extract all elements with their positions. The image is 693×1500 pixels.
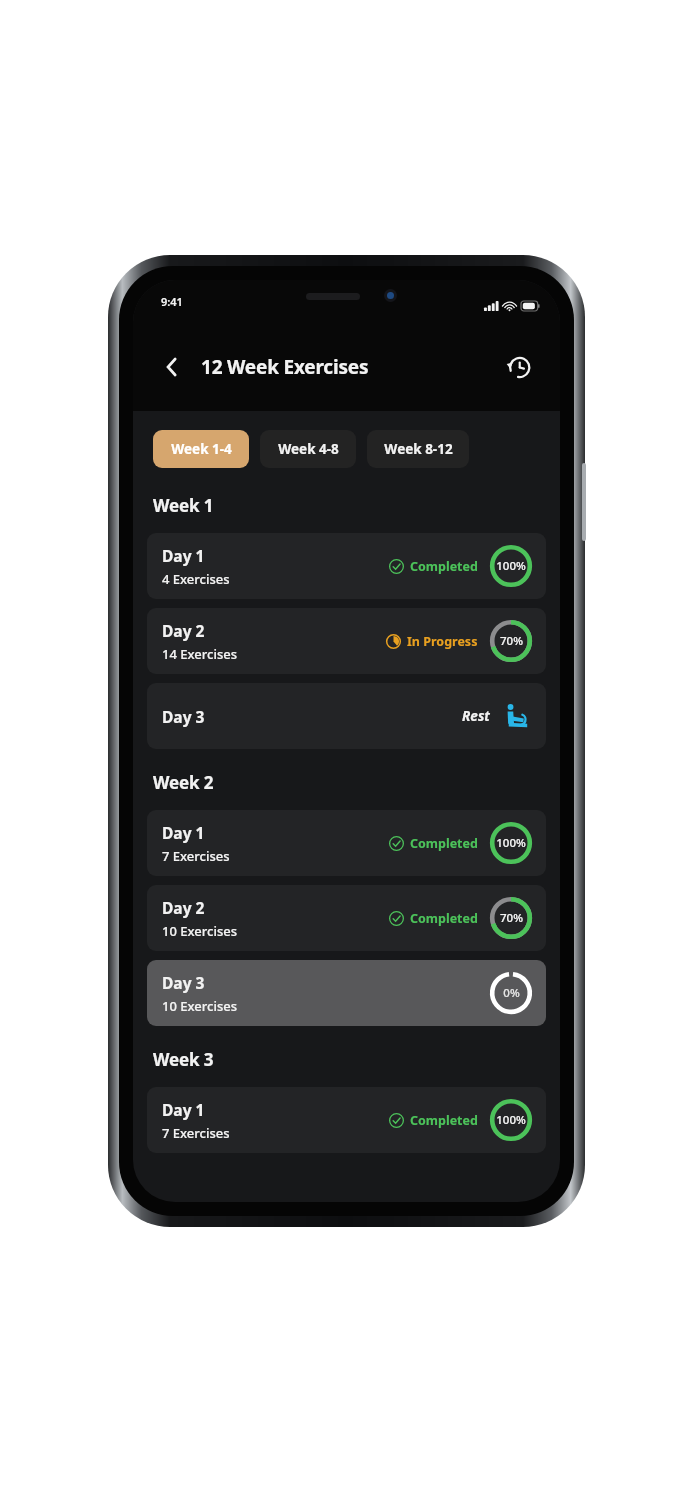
- staticText: Completed: [410, 835, 478, 852]
- staticText: Week 2: [153, 771, 214, 794]
- button[interactable]: Week 4-8: [260, 430, 356, 468]
- staticText: Rest: [462, 707, 490, 725]
- staticText: 10 Exercises: [162, 997, 237, 1015]
- button[interactable]: Day 3: [147, 683, 546, 749]
- staticText: Completed: [410, 558, 478, 575]
- staticText: Day 1: [162, 1099, 205, 1120]
- staticText: Week 1-4: [171, 440, 232, 458]
- staticText: Completed: [410, 1112, 478, 1129]
- staticText: 9:41: [161, 294, 183, 309]
- staticText: Day 3: [162, 706, 205, 727]
- button[interactable]: Day 2: [147, 608, 546, 674]
- button[interactable]: Day 3: [147, 960, 546, 1026]
- staticText: 100%: [496, 835, 526, 851]
- button[interactable]: Day 1: [147, 810, 546, 876]
- staticText: Day 1: [162, 545, 205, 566]
- button[interactable]: Week 1-4: [153, 430, 249, 468]
- staticText: 12 Week Exercises: [201, 354, 369, 380]
- button[interactable]: Day 2: [147, 885, 546, 951]
- staticText: 100%: [496, 1112, 526, 1128]
- staticText: 7 Exercises: [162, 1124, 230, 1142]
- button[interactable]: Week 8-12: [367, 430, 469, 468]
- staticText: 7 Exercises: [162, 847, 230, 865]
- staticText: 100%: [496, 558, 526, 574]
- staticText: In Progress: [407, 633, 478, 650]
- staticText: 0%: [503, 985, 520, 1001]
- staticText: Week 4-8: [278, 440, 339, 458]
- staticText: 70%: [500, 633, 523, 649]
- button[interactable]: History: [498, 346, 540, 388]
- staticText: 14 Exercises: [162, 645, 237, 663]
- staticText: Week 1: [153, 494, 214, 517]
- staticText: Completed: [410, 910, 478, 927]
- staticText: Day 2: [162, 620, 205, 641]
- staticText: 10 Exercises: [162, 922, 237, 940]
- staticText: 4 Exercises: [162, 570, 230, 588]
- staticText: Day 2: [162, 897, 205, 918]
- staticText: Week 3: [153, 1048, 214, 1071]
- button[interactable]: Day 1: [147, 1087, 546, 1153]
- button[interactable]: Day 1: [147, 533, 546, 599]
- staticText: 70%: [500, 910, 523, 926]
- staticText: Day 1: [162, 822, 205, 843]
- staticText: Day 3: [162, 972, 205, 993]
- button[interactable]: Back: [151, 346, 193, 388]
- staticText: Week 8-12: [384, 440, 453, 458]
